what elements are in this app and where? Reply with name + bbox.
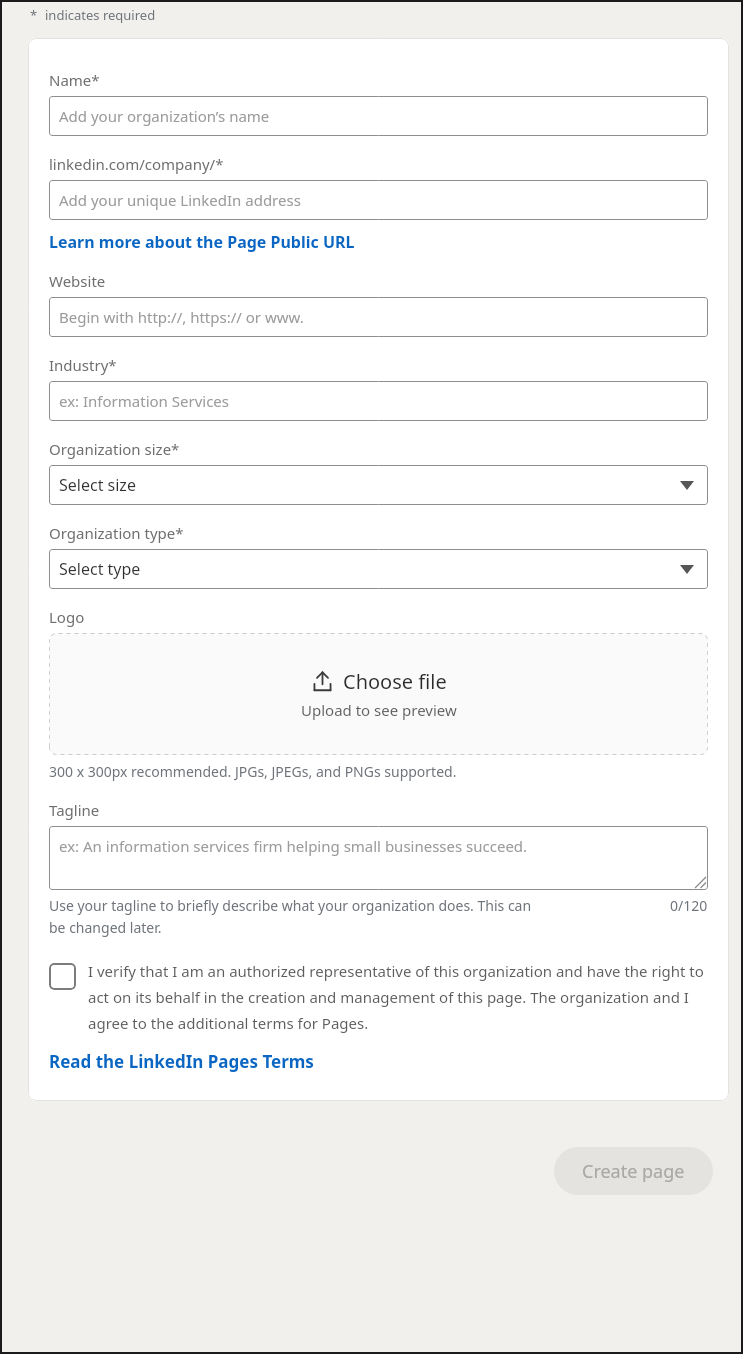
staticText: Read the LinkedIn Pages Terms (49, 1050, 314, 1073)
staticText: ex: Information Services (59, 391, 229, 411)
staticText: 300 x 300px recommended. JPGs, JPEGs, an… (49, 762, 457, 781)
staticText: Name* (49, 70, 100, 90)
staticText: indicates required (45, 6, 156, 24)
button[interactable]: ex: Information Services (49, 381, 708, 421)
button[interactable]: Create page (554, 1147, 713, 1195)
staticText: Add your unique LinkedIn address (59, 190, 301, 210)
button[interactable]: Select size (49, 465, 708, 505)
button[interactable]: ex: An information services firm helping… (49, 826, 708, 890)
staticText: Create page (582, 1159, 685, 1184)
button[interactable]: Add your unique LinkedIn address (49, 180, 708, 220)
staticText: I verify that I am an authorized represe… (88, 961, 708, 1034)
button[interactable]: I verify that I am an authorized represe… (49, 961, 708, 1034)
button[interactable]: Begin with http://, https:// or www. (49, 297, 708, 337)
staticText: 0/120 (670, 896, 708, 915)
button[interactable]: Select type (49, 549, 708, 589)
button[interactable]: Choose logo file to upload (49, 633, 708, 755)
button[interactable]: Learn more about the Page Public URL (49, 231, 355, 253)
staticText: Add your organization’s name (59, 106, 270, 126)
staticText: ex: An information services firm helping… (59, 836, 528, 856)
staticText: Tagline (49, 800, 100, 820)
staticText: Select size (59, 474, 136, 496)
staticText: linkedin.com/company/* (49, 154, 224, 174)
staticText: Begin with http://, https:// or www. (59, 307, 304, 327)
staticText: Organization size* (49, 439, 180, 459)
staticText: Choose file (343, 668, 447, 695)
button[interactable]: Add your organization’s name (49, 96, 708, 136)
staticText: Website (49, 271, 106, 291)
staticText: Organization type* (49, 523, 184, 543)
staticText: Use your tagline to briefly describe wha… (49, 896, 670, 937)
button[interactable]: Read the LinkedIn Pages Terms (49, 1050, 314, 1073)
staticText: * (30, 6, 38, 24)
staticText: Upload to see preview (301, 700, 457, 720)
staticText: Logo (49, 607, 85, 627)
staticText: Industry* (49, 355, 117, 375)
staticText: Learn more about the Page Public URL (49, 231, 355, 253)
staticText: Select type (59, 558, 141, 580)
